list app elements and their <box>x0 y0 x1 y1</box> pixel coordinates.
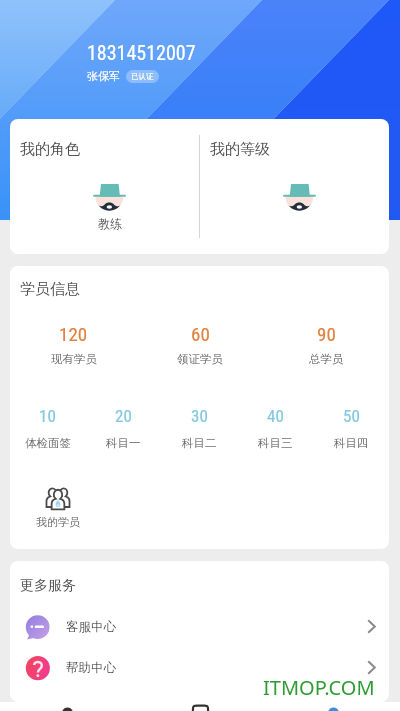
button[interactable]: Home <box>0 702 134 711</box>
button[interactable]: 帮助中心 <box>10 647 389 688</box>
staticText: 我的学员 <box>36 515 80 529</box>
button[interactable]: 我的学员 <box>10 487 105 529</box>
staticText: 50 <box>343 406 360 426</box>
staticText: 10 <box>39 406 56 426</box>
staticText: 学员信息 <box>20 280 80 299</box>
button[interactable]: 10 <box>10 406 85 450</box>
button[interactable]: Courses <box>134 702 267 711</box>
staticText: 120 <box>59 323 88 345</box>
staticText: 张保军 <box>87 69 120 83</box>
staticText: 客服中心 <box>66 619 116 635</box>
staticText: 教练 <box>98 216 122 231</box>
staticText: 更多服务 <box>20 577 76 595</box>
button[interactable]: 30 <box>161 406 237 450</box>
staticText: 科目一 <box>106 436 141 450</box>
button[interactable]: 我的角色 <box>10 119 199 254</box>
staticText: ITMOP.COM <box>263 674 375 701</box>
button[interactable]: 90 <box>263 323 389 366</box>
button[interactable]: 120 <box>10 323 137 366</box>
staticText: 30 <box>191 406 208 426</box>
staticText: 我的角色 <box>20 140 80 159</box>
staticText: 帮助中心 <box>66 660 116 676</box>
button[interactable]: 我的等级 <box>200 119 389 254</box>
staticText: 60 <box>191 323 210 345</box>
staticText: 20 <box>115 406 132 426</box>
staticText: 领证学员 <box>177 352 223 366</box>
button[interactable]: 50 <box>313 406 389 450</box>
button[interactable]: Profile <box>267 702 400 711</box>
staticText: 总学员 <box>309 352 344 366</box>
staticText: 现有学员 <box>51 352 97 366</box>
staticText: 科目四 <box>334 436 369 450</box>
staticText: 科目二 <box>182 436 217 450</box>
staticText: 科目三 <box>258 436 293 450</box>
staticText: 90 <box>317 323 336 345</box>
staticText: 体检面签 <box>25 436 71 450</box>
staticText: 已认证 <box>131 72 154 81</box>
staticText: 18314512007 <box>87 41 196 64</box>
staticText: 我的等级 <box>210 140 270 159</box>
button[interactable]: 40 <box>237 406 313 450</box>
button[interactable]: 客服中心 <box>10 606 389 647</box>
button[interactable]: 20 <box>85 406 161 450</box>
button[interactable]: 60 <box>137 323 263 366</box>
staticText: 40 <box>267 406 284 426</box>
